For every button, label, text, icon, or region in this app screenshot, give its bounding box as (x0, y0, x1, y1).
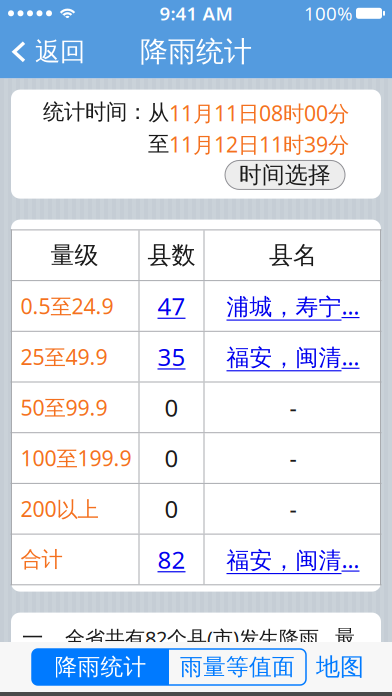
staticText: 0.5至24.9 (20, 292, 113, 320)
button[interactable]: 时间选择 (225, 160, 345, 189)
staticText: 200以上 (20, 495, 98, 523)
staticText: 最 (335, 625, 355, 649)
staticText: - (289, 392, 296, 422)
staticText: 降雨统计 (140, 35, 252, 69)
button[interactable]: 返回 (0, 26, 93, 78)
staticText: 量级 (50, 240, 98, 270)
button[interactable]: - (204, 433, 381, 483)
staticText: 地图 (316, 652, 364, 682)
staticText: 0 (164, 442, 178, 474)
staticText: 9:41 AM (159, 1, 232, 26)
staticText: 雨量等值面 (180, 653, 295, 681)
button[interactable]: 0 (139, 433, 203, 483)
staticText: 82 (157, 543, 185, 575)
staticText: 一 (22, 625, 43, 651)
staticText: 全省共有82个县(市)发生降雨 (65, 625, 319, 651)
button[interactable]: 地图 (316, 642, 364, 692)
staticText: 降雨统计 (54, 653, 146, 681)
button[interactable]: 35 (139, 332, 203, 381)
staticText: 11月12日11时39分 (169, 130, 349, 158)
staticText: 浦城，寿宁… (226, 291, 359, 321)
button[interactable]: - (204, 484, 381, 534)
staticText: 福安，闽清… (226, 544, 359, 574)
staticText: 县数 (147, 240, 195, 270)
button[interactable]: 雨量等值面 (169, 649, 306, 685)
staticText: 100至199.9 (20, 444, 131, 472)
staticText: 从 (148, 100, 169, 126)
staticText: 合计 (20, 546, 62, 572)
button[interactable]: 0 (139, 382, 203, 432)
staticText: 47 (157, 290, 185, 322)
staticText: 返回 (35, 36, 85, 67)
staticText: - (289, 443, 296, 473)
staticText: 至 (148, 131, 169, 157)
button[interactable]: 福安，闽清… (204, 535, 381, 584)
button[interactable]: - (204, 382, 381, 432)
staticText: 时间选择 (239, 161, 331, 189)
button[interactable]: 浦城，寿宁… (204, 281, 381, 331)
button[interactable]: 0 (139, 484, 203, 534)
staticText: 0 (164, 493, 178, 525)
button[interactable]: 47 (139, 281, 203, 331)
button[interactable]: 福安，闽清… (204, 332, 381, 381)
staticText: 11月11日08时00分 (169, 99, 349, 127)
button[interactable]: 82 (139, 535, 203, 584)
button[interactable]: 降雨统计 (32, 649, 169, 685)
staticText: 25至49.9 (20, 342, 107, 371)
staticText: 50至99.9 (20, 393, 107, 421)
staticText: 县名 (269, 240, 317, 270)
staticText: 统计时间： (43, 99, 148, 125)
staticText: 0 (164, 391, 178, 423)
staticText: 福安，闽清… (226, 342, 359, 372)
staticText: 35 (157, 341, 185, 373)
staticText: 100% (304, 1, 353, 26)
staticText: - (289, 494, 296, 524)
